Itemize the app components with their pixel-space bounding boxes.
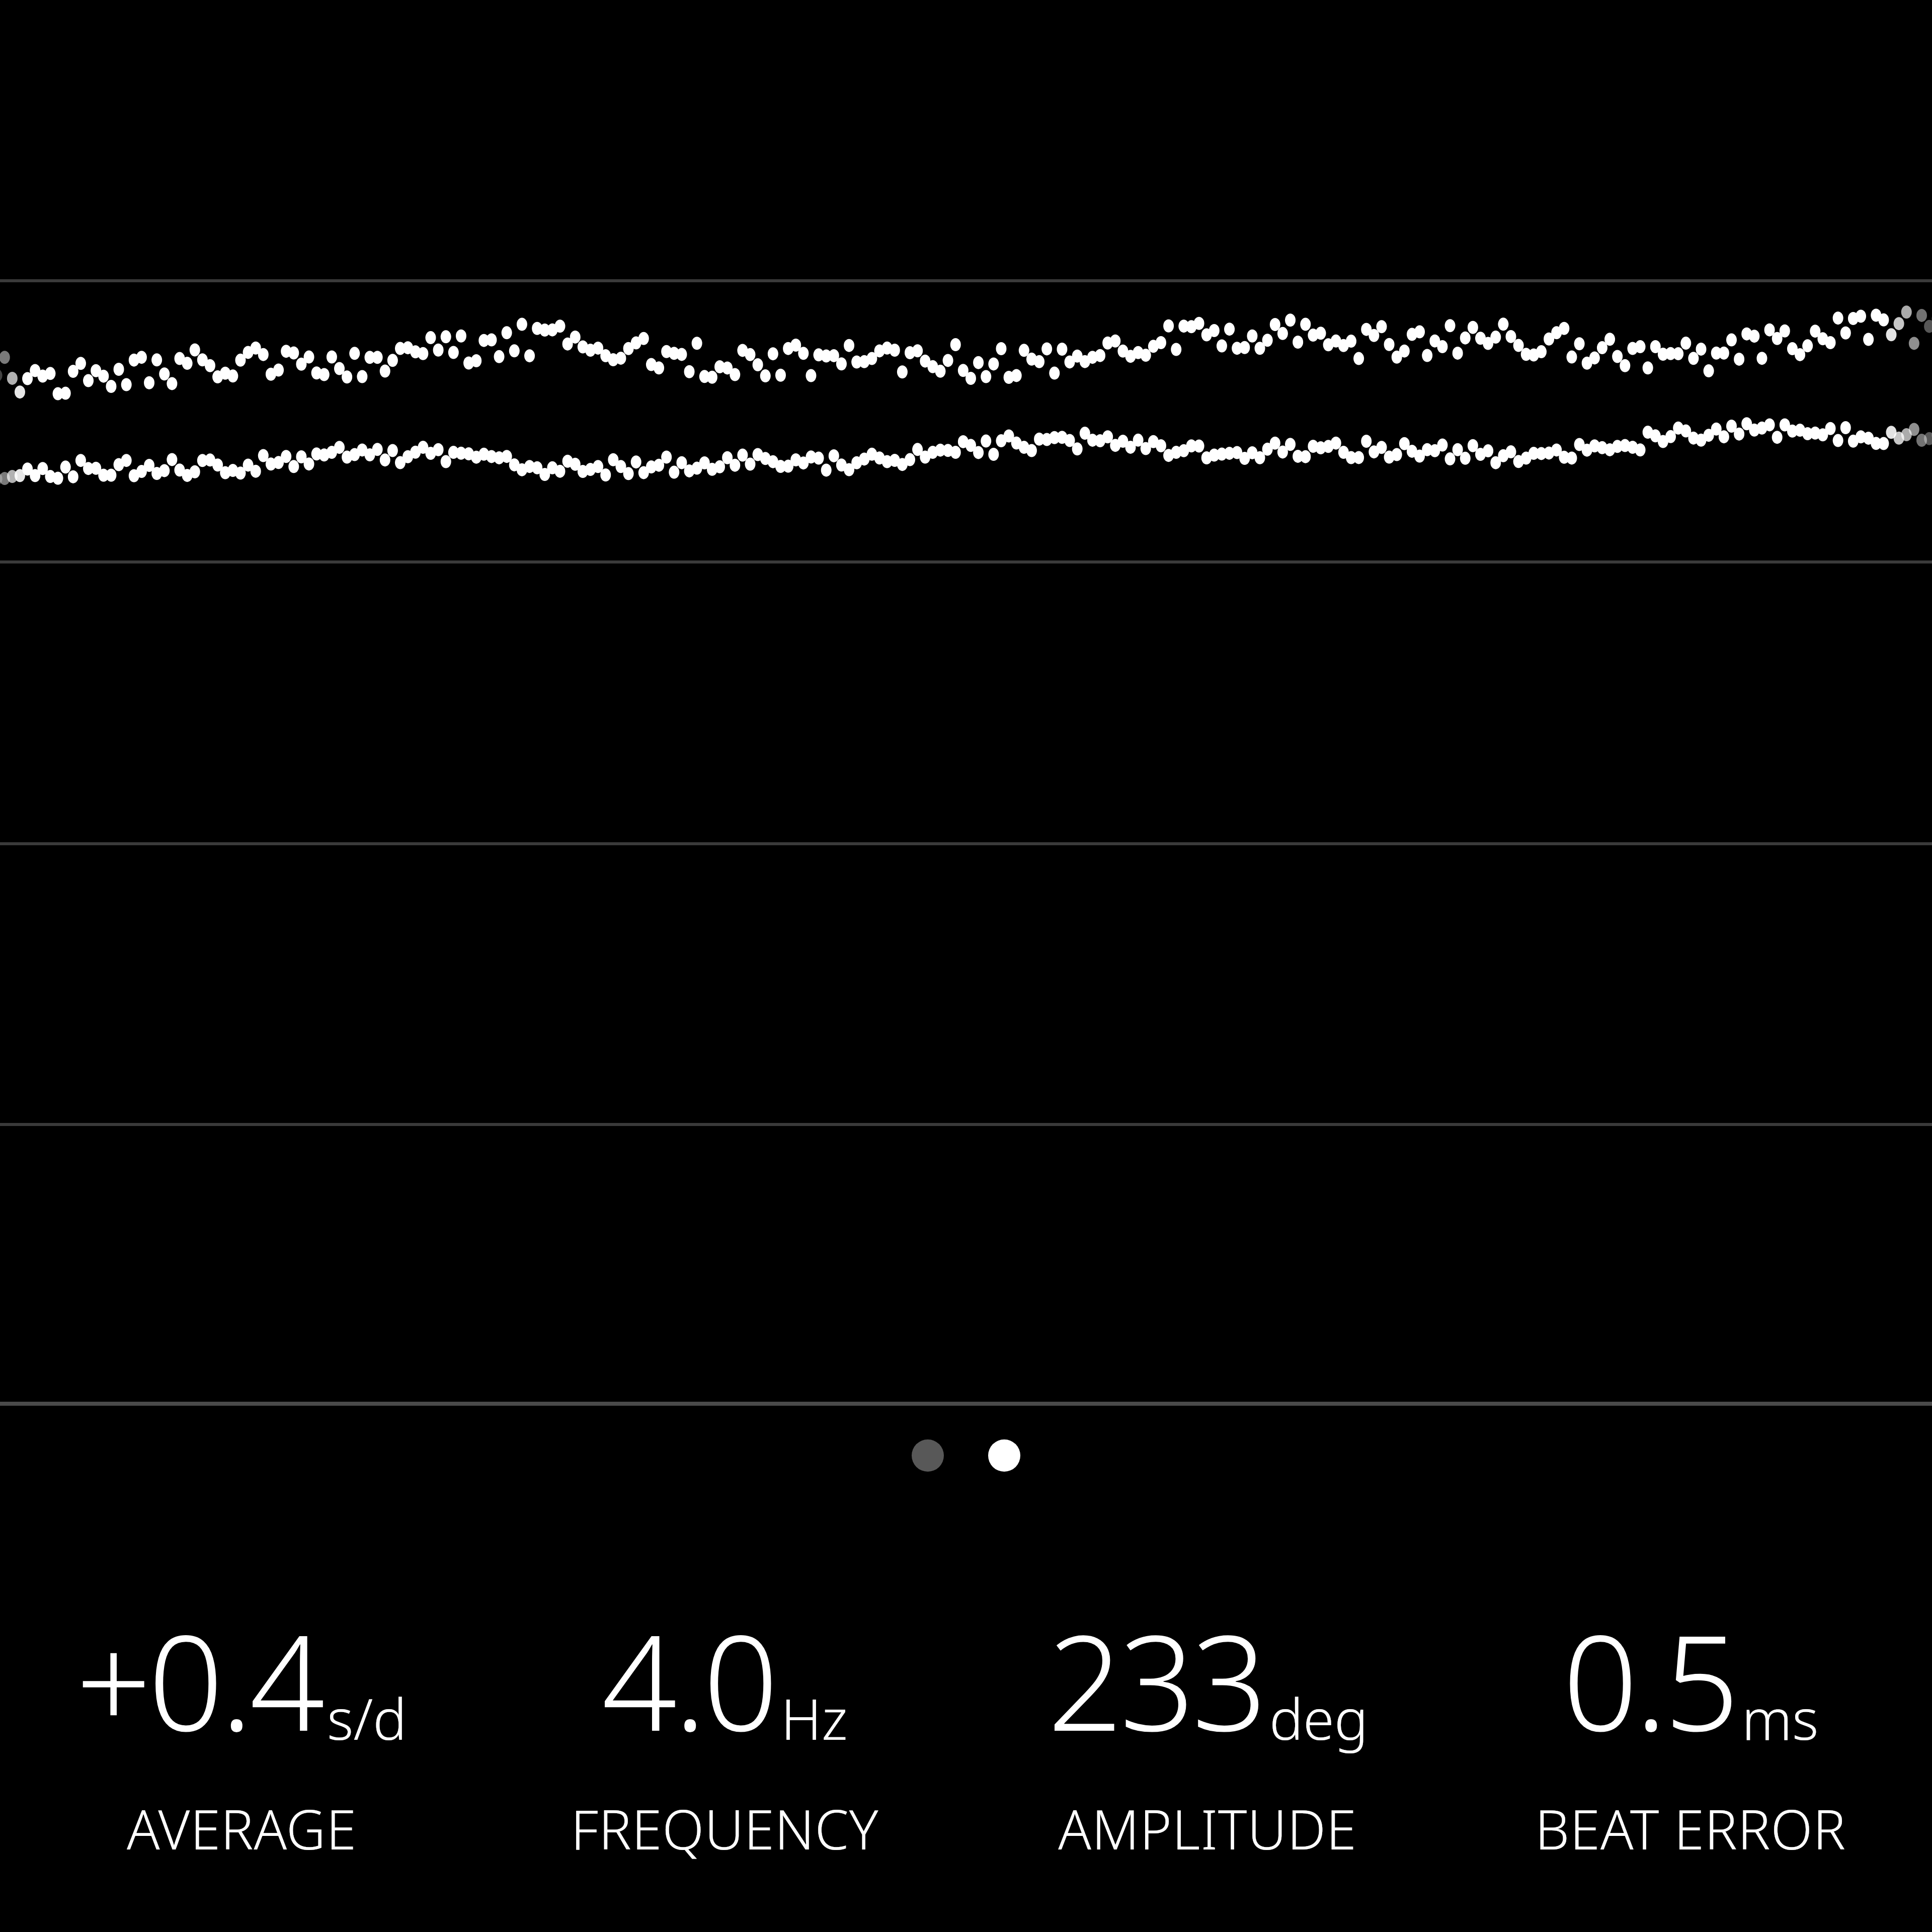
staticText: BEAT ERROR bbox=[1535, 1792, 1846, 1866]
staticText: ms bbox=[1742, 1679, 1819, 1756]
staticText: 4.0 bbox=[602, 1590, 776, 1769]
staticText: Hz bbox=[781, 1679, 848, 1756]
staticText: +0.4 bbox=[76, 1590, 322, 1769]
staticText: 233 bbox=[1048, 1590, 1264, 1769]
button[interactable]: 0.5 bbox=[1449, 1585, 1932, 1871]
button[interactable]: Page indicator, page 2 of 2 bbox=[912, 1439, 1020, 1472]
staticText: deg bbox=[1269, 1679, 1368, 1756]
button[interactable]: 233 bbox=[966, 1585, 1449, 1871]
button[interactable]: 4.0 bbox=[483, 1585, 966, 1871]
staticText: AMPLITUDE bbox=[1058, 1792, 1357, 1866]
staticText: 0.5 bbox=[1563, 1590, 1737, 1769]
staticText: AVERAGE bbox=[127, 1792, 357, 1866]
staticText: FREQUENCY bbox=[571, 1792, 879, 1866]
button[interactable]: Timing trace graph bbox=[0, 0, 1932, 1409]
staticText: s/d bbox=[327, 1679, 407, 1756]
button[interactable]: +0.4 bbox=[0, 1585, 483, 1871]
